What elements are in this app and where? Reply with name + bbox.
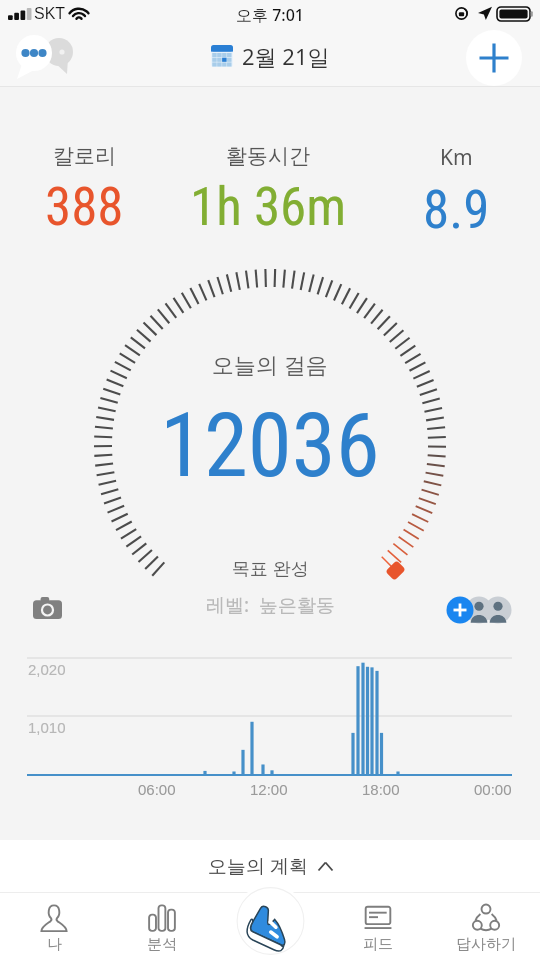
button[interactable]: 답사하기 [432, 895, 540, 960]
staticText: 칼로리 [53, 143, 116, 169]
button[interactable]: 칼로리 [0, 143, 174, 238]
staticText: 답사하기 [456, 935, 516, 954]
staticText: 활동시간 [226, 143, 310, 169]
staticText: SKT [34, 5, 66, 23]
staticText: 1h 36m [190, 176, 347, 238]
staticText: 388 [45, 176, 124, 238]
staticText: 피드 [363, 935, 393, 954]
staticText: 1,010 [28, 719, 66, 736]
staticText: 레벨: 높은활동 [206, 592, 335, 618]
staticText: 18:00 [362, 781, 400, 798]
staticText: Km [440, 143, 473, 172]
button[interactable]: 분석 [108, 895, 216, 960]
staticText: 12036 [160, 393, 380, 497]
button[interactable]: 피드 [324, 895, 432, 960]
staticText: 2,020 [28, 661, 66, 678]
button[interactable]: 활동시간 [178, 143, 358, 238]
button[interactable]: Km [366, 143, 540, 241]
staticText: 06:00 [138, 781, 176, 798]
staticText: 목표 완성 [232, 556, 309, 581]
staticText: 8.9 [423, 179, 490, 241]
button[interactable]: Messages [10, 32, 74, 82]
staticText: 나 [47, 935, 62, 954]
button[interactable]: Add [466, 30, 522, 86]
staticText: 오늘의 계획 [208, 853, 308, 879]
button[interactable]: Activity [232, 887, 309, 955]
button[interactable]: Camera [28, 589, 66, 627]
button[interactable]: Friends [444, 594, 510, 626]
staticText: 오후 7:01 [236, 4, 304, 26]
staticText: 분석 [147, 935, 177, 954]
staticText: 12:00 [250, 781, 288, 798]
button[interactable]: 나 [0, 895, 108, 960]
staticText: 2월 21일 [242, 41, 330, 71]
staticText: 오늘의 걸음 [212, 349, 328, 379]
button[interactable]: 오늘의 계획 [0, 840, 540, 892]
staticText: 00:00 [474, 781, 512, 798]
